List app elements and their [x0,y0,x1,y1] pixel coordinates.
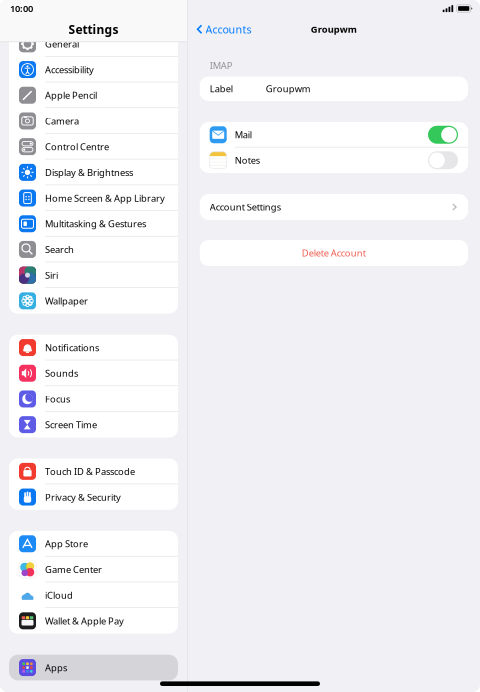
button[interactable]: Settings [0,17,187,41]
button[interactable]: Touch ID & Passcode [9,458,178,484]
staticText: Wallet & Apple Pay [45,615,124,627]
button[interactable]: Sounds [9,360,178,386]
button[interactable]: Wallet & Apple Pay [9,608,178,634]
button[interactable]: Multitasking & Gestures [9,211,178,237]
staticText: Groupwm [266,83,311,95]
button[interactable]: Notes [200,147,468,173]
staticText: Wallpaper [45,295,88,307]
staticText: Accessibility [45,63,94,76]
staticText: Touch ID & Passcode [45,465,135,478]
staticText: Mail [235,129,252,141]
staticText: Notifications [45,341,99,354]
button[interactable]: Account Settings [200,194,468,220]
staticText: Home Screen & App Library [45,192,165,204]
button[interactable]: Search [9,237,178,262]
button[interactable]: Control Centre [9,134,178,159]
staticText: General [45,38,79,50]
staticText: Siri [45,269,58,281]
staticText: Display & Brightness [45,166,133,179]
staticText: Notes [235,154,260,166]
button[interactable]: Mail [200,122,468,147]
staticText: Groupwm [311,23,357,35]
button[interactable]: Game Center [9,557,178,582]
staticText: IMAP [210,59,233,71]
staticText: Focus [45,393,70,405]
button[interactable]: Home Screen & App Library [9,185,178,211]
button[interactable]: App Store [9,531,178,557]
button[interactable]: Display & Brightness [9,159,178,185]
staticText: Sounds [45,367,78,379]
staticText: Accounts [205,22,251,36]
staticText: Screen Time [45,418,97,431]
staticText: iCloud [45,589,73,601]
staticText: Account Settings [210,201,281,213]
button[interactable]: Apple Pencil [9,82,178,108]
staticText: Apple Pencil [45,89,97,101]
button[interactable]: Privacy & Security [9,484,178,510]
staticText: Search [45,243,74,256]
button[interactable]: Wallpaper [9,288,178,314]
button[interactable]: Focus [9,386,178,412]
staticText: App Store [45,538,88,550]
staticText: 10:00 [10,2,33,15]
staticText: Apps [45,661,67,674]
button[interactable]: Siri [9,262,178,288]
staticText: Label [210,83,233,95]
staticText: Privacy & Security [45,491,121,503]
staticText: Delete Account [302,247,366,259]
button[interactable]: Camera [9,108,178,134]
button[interactable]: Delete Account [200,240,468,266]
button[interactable]: Notifications [9,335,178,360]
staticText: Camera [45,115,79,127]
staticText: Game Center [45,563,102,576]
button[interactable]: Screen Time [9,412,178,437]
button[interactable]: iCloud [9,582,178,608]
button[interactable]: Accessibility [9,57,178,82]
staticText: Settings [68,21,118,37]
staticText: Control Centre [45,140,109,153]
button[interactable]: Accounts [188,17,259,41]
button[interactable]: Apps [0,655,187,680]
button[interactable]: General [9,31,178,57]
staticText: Multitasking & Gestures [45,218,146,230]
